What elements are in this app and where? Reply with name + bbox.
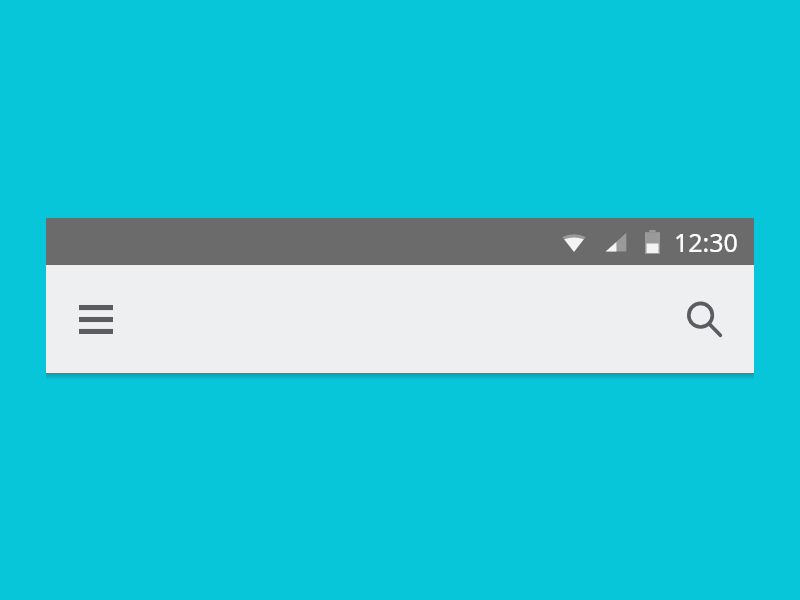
- button[interactable]: Open navigation menu: [67, 290, 125, 348]
- button[interactable]: Search: [675, 290, 733, 348]
- staticText: 12:30: [674, 225, 738, 259]
